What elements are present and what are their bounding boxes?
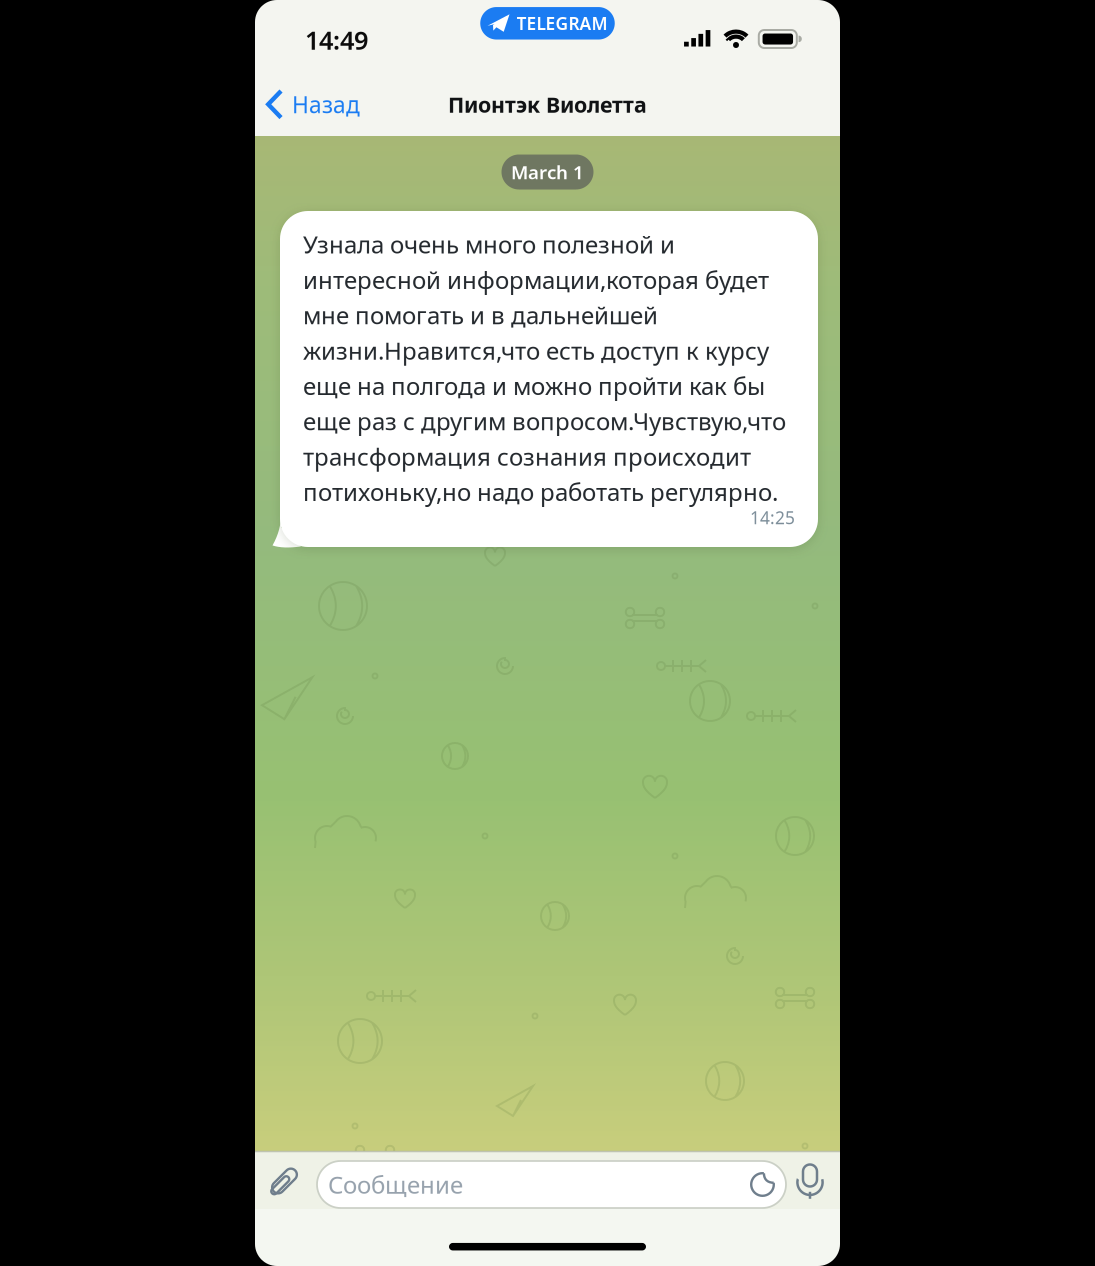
button[interactable]: Telegram bbox=[480, 7, 615, 40]
staticText: 14:25 bbox=[750, 506, 795, 529]
staticText: еще на полгода и можно пройти как бы bbox=[303, 370, 765, 402]
staticText: еще раз с другим вопросом.Чувствую,что bbox=[303, 405, 786, 437]
button[interactable]: Message bbox=[317, 1161, 786, 1208]
staticText: TELEGRAM bbox=[516, 12, 607, 35]
staticText: трансформация сознания происходит bbox=[303, 440, 751, 472]
staticText: потихоньку,но надо работать регулярно. bbox=[303, 476, 778, 508]
staticText: Пионтэк Виолетта bbox=[448, 90, 647, 119]
button[interactable]: Back bbox=[266, 89, 360, 120]
staticText: 14:49 bbox=[305, 23, 368, 57]
button[interactable]: Attach file bbox=[268, 1164, 300, 1198]
staticText: Назад bbox=[292, 89, 360, 119]
staticText: Сообщение bbox=[328, 1169, 463, 1200]
staticText: Узнала очень много полезной и bbox=[303, 228, 675, 260]
staticText: жизни.Нравится,что есть доступ к курсу bbox=[303, 334, 769, 366]
button[interactable]: Record voice message bbox=[792, 1163, 828, 1203]
staticText: March 1 bbox=[511, 160, 584, 184]
staticText: мне помогать и в дальнейшей bbox=[303, 299, 658, 331]
staticText: интересной информации,которая будет bbox=[303, 264, 769, 295]
